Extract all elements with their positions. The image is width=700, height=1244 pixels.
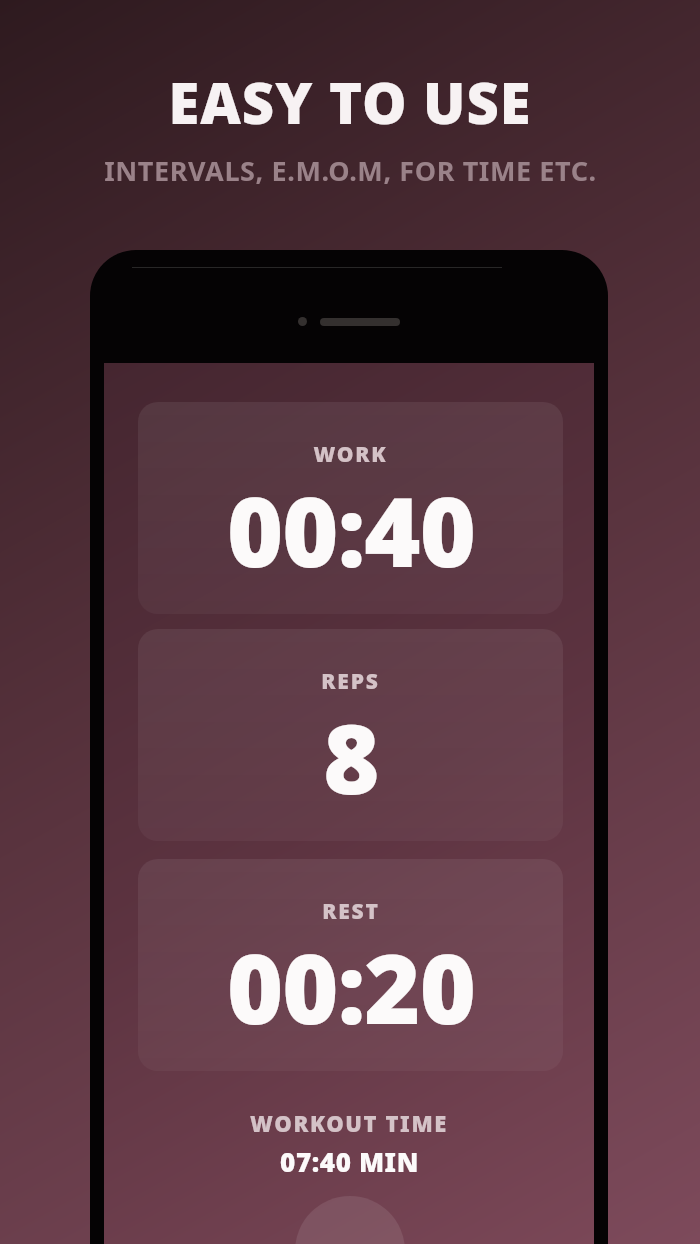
- staticText: WORKOUT TIME: [250, 1108, 448, 1138]
- staticText: 8: [323, 691, 379, 822]
- staticText: REST: [322, 897, 380, 926]
- staticText: 07:40 MIN: [280, 1144, 419, 1179]
- button[interactable]: REPS: [138, 629, 563, 841]
- button[interactable]: REST: [138, 859, 563, 1071]
- staticText: EASY TO USE: [168, 64, 532, 140]
- button[interactable]: WORK: [138, 402, 563, 614]
- staticText: 00:20: [227, 921, 475, 1052]
- staticText: REPS: [321, 667, 380, 696]
- staticText: WORK: [313, 440, 388, 469]
- staticText: 00:40: [227, 464, 475, 595]
- button[interactable]: Start workout: [295, 1196, 405, 1244]
- staticText: INTERVALS, E.M.O.M, FOR TIME ETC.: [104, 152, 597, 189]
